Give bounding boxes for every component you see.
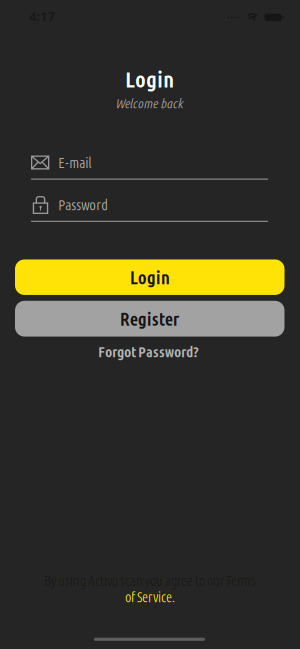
staticText: Login (130, 267, 170, 288)
button[interactable]: Login (15, 259, 284, 295)
staticText: Welcome back (116, 96, 183, 111)
staticText: 4:17 (29, 7, 55, 25)
staticText: Register (120, 308, 180, 329)
button[interactable]: Forgot Password? (98, 343, 199, 360)
button[interactable]: By using Activo scan you agree to our Te… (44, 573, 256, 605)
staticText: Login (125, 66, 174, 92)
staticText: By using Activo scan you agree to our Te… (44, 573, 256, 589)
button[interactable]: Password (31, 196, 268, 222)
button[interactable]: E-mail (31, 154, 268, 180)
staticText: Password (58, 196, 108, 213)
staticText: Forgot Password? (98, 343, 199, 360)
staticText: of Service. (125, 589, 175, 605)
button[interactable]: Register (15, 301, 284, 337)
staticText: E-mail (58, 154, 91, 171)
